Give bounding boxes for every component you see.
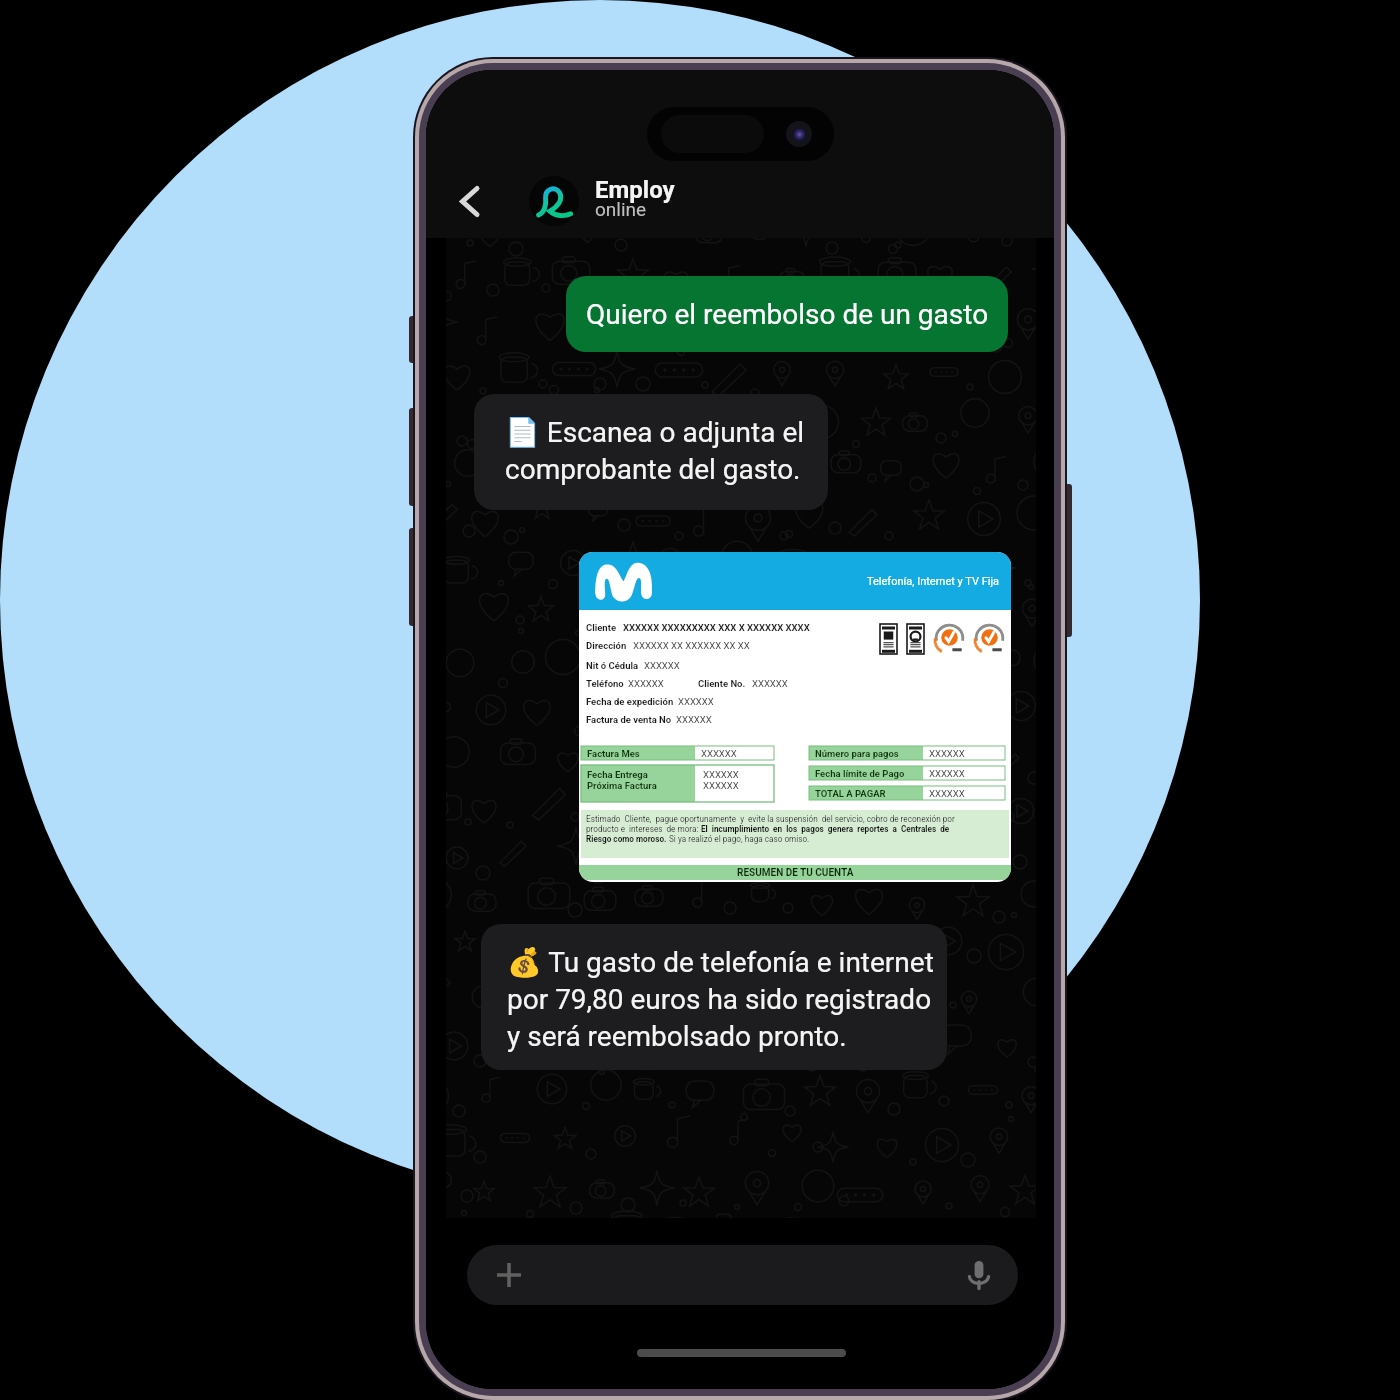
button[interactable]: 💰 Tu gasto de telefonía e internet por 7… (481, 924, 947, 1070)
button[interactable]: Employ (529, 176, 685, 226)
staticText: XXXXXX (929, 748, 965, 759)
staticText: XXXXXX (678, 696, 714, 707)
staticText: TOTAL A PAGAR (815, 788, 886, 799)
staticText: XXXXXX (628, 678, 664, 689)
button[interactable]: Back (426, 167, 518, 235)
staticText: Teléfono (586, 678, 624, 689)
staticText: Riesgo como moroso. (586, 834, 669, 844)
staticText: Telefonía, Internet y TV Fija (867, 575, 1000, 588)
staticText: Número para pagos (815, 748, 899, 759)
staticText: Employ (595, 176, 675, 204)
staticText: Fecha de expedición (586, 696, 674, 707)
staticText: Factura de venta No (586, 714, 672, 725)
staticText: Si ya realizó el pago, haga caso omiso. (669, 834, 810, 844)
staticText: 📄 Escanea o adjunta el comprobante del g… (505, 416, 805, 486)
staticText: El incumplimiento en los pagos genera re… (701, 824, 950, 834)
staticText: Quiero el reembolso de un gasto (586, 298, 989, 331)
staticText: Cliente (586, 622, 617, 633)
button[interactable]: 📄 Escanea o adjunta el comprobante del g… (474, 394, 828, 510)
button[interactable]: Attach (467, 1245, 1018, 1305)
staticText: XXXXXX (929, 788, 965, 799)
staticText: Próxima Factura (587, 780, 657, 791)
staticText: XXXXXX (703, 769, 739, 780)
staticText: XXXXXX XXXXXXXXX XXX X XXXXXX XXXX (623, 622, 810, 633)
staticText: Factura Mes (587, 748, 640, 759)
staticText: XXXXXX (929, 768, 965, 779)
staticText: XXXXXX (701, 748, 737, 759)
other: Voice message (968, 1260, 990, 1290)
button[interactable]: Quiero el reembolso de un gasto (566, 276, 1008, 352)
staticText: 💰 Tu gasto de telefonía e internet por 7… (507, 946, 934, 1053)
staticText: Dirección (586, 640, 627, 651)
other: Attach (497, 1263, 521, 1287)
staticText: XXXXXX (676, 714, 712, 725)
staticText: Estimado Cliente, pague oportunamente y … (586, 814, 955, 824)
button[interactable]: Telefonía, Internet y TV Fija (579, 552, 1011, 882)
staticText: XXXXXX (703, 780, 739, 791)
staticText: producto e intereses de mora: (586, 824, 701, 834)
staticText: XXXXXX (644, 660, 680, 671)
staticText: Fecha Entrega (587, 769, 648, 780)
staticText: XXXXXX (752, 678, 788, 689)
staticText: Nit ó Cédula (586, 660, 639, 671)
staticText: XXXXXX XX XXXXXX XX XX (633, 640, 750, 651)
staticText: online (595, 198, 647, 220)
staticText: Cliente No. (698, 678, 746, 689)
staticText: Fecha límite de Pago (815, 768, 905, 779)
staticText: RESUMEN DE TU CUENTA (737, 867, 854, 879)
